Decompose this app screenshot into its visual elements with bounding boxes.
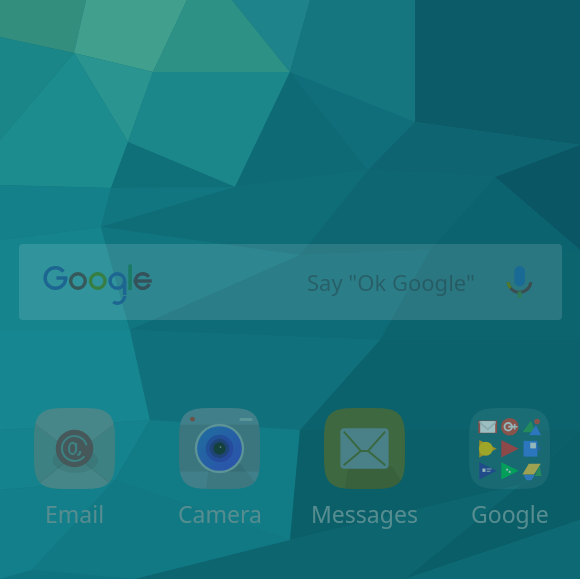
other: Google bbox=[44, 260, 154, 304]
other: Voice search bbox=[508, 266, 531, 298]
staticText: Email bbox=[45, 498, 105, 529]
button[interactable]: Google bbox=[437, 408, 580, 529]
button[interactable]: Google bbox=[19, 244, 562, 320]
staticText: Messages bbox=[311, 498, 418, 529]
staticText: Camera bbox=[178, 498, 262, 529]
button[interactable]: Messages bbox=[292, 408, 437, 529]
staticText: Say "Ok Google" bbox=[307, 267, 475, 297]
staticText: Google bbox=[471, 498, 549, 529]
button[interactable]: Email bbox=[2, 408, 147, 529]
button[interactable]: Camera bbox=[147, 408, 292, 529]
